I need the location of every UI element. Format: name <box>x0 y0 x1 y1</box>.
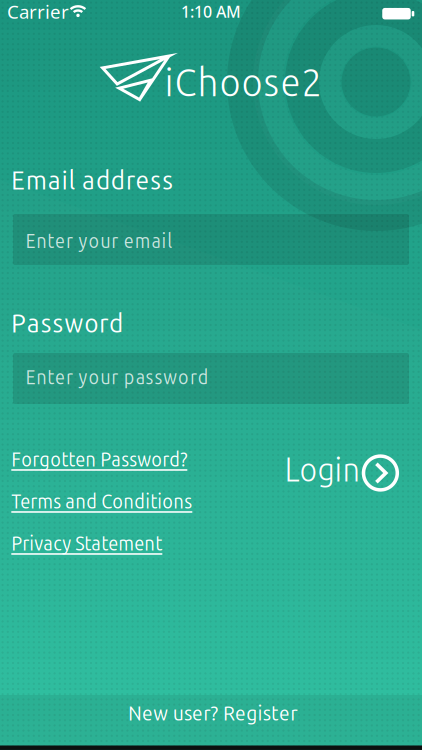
staticText: Privacy Statement <box>11 532 162 554</box>
staticText: Terms and Conditions <box>11 490 192 512</box>
button[interactable]: Terms and Conditions <box>11 490 192 512</box>
button[interactable]: Forgotten Password? <box>11 448 187 470</box>
button[interactable]: Enter your email <box>13 214 409 265</box>
staticText: 1:10 AM <box>181 1 241 22</box>
staticText: iChoose2 <box>164 59 321 104</box>
staticText: Forgotten Password? <box>11 448 187 470</box>
staticText: Email address <box>11 164 173 194</box>
staticText: Login <box>285 450 361 488</box>
staticText: Carrier <box>7 0 69 24</box>
button[interactable]: New user? Register <box>0 695 422 745</box>
staticText: Enter your email <box>25 230 172 252</box>
button[interactable]: Privacy Statement <box>11 532 162 554</box>
staticText: Password <box>11 307 123 338</box>
staticText: New user? Register <box>128 701 297 724</box>
button[interactable]: Login <box>285 450 399 488</box>
button[interactable]: Enter your password <box>13 353 409 404</box>
staticText: Enter your password <box>25 366 209 388</box>
